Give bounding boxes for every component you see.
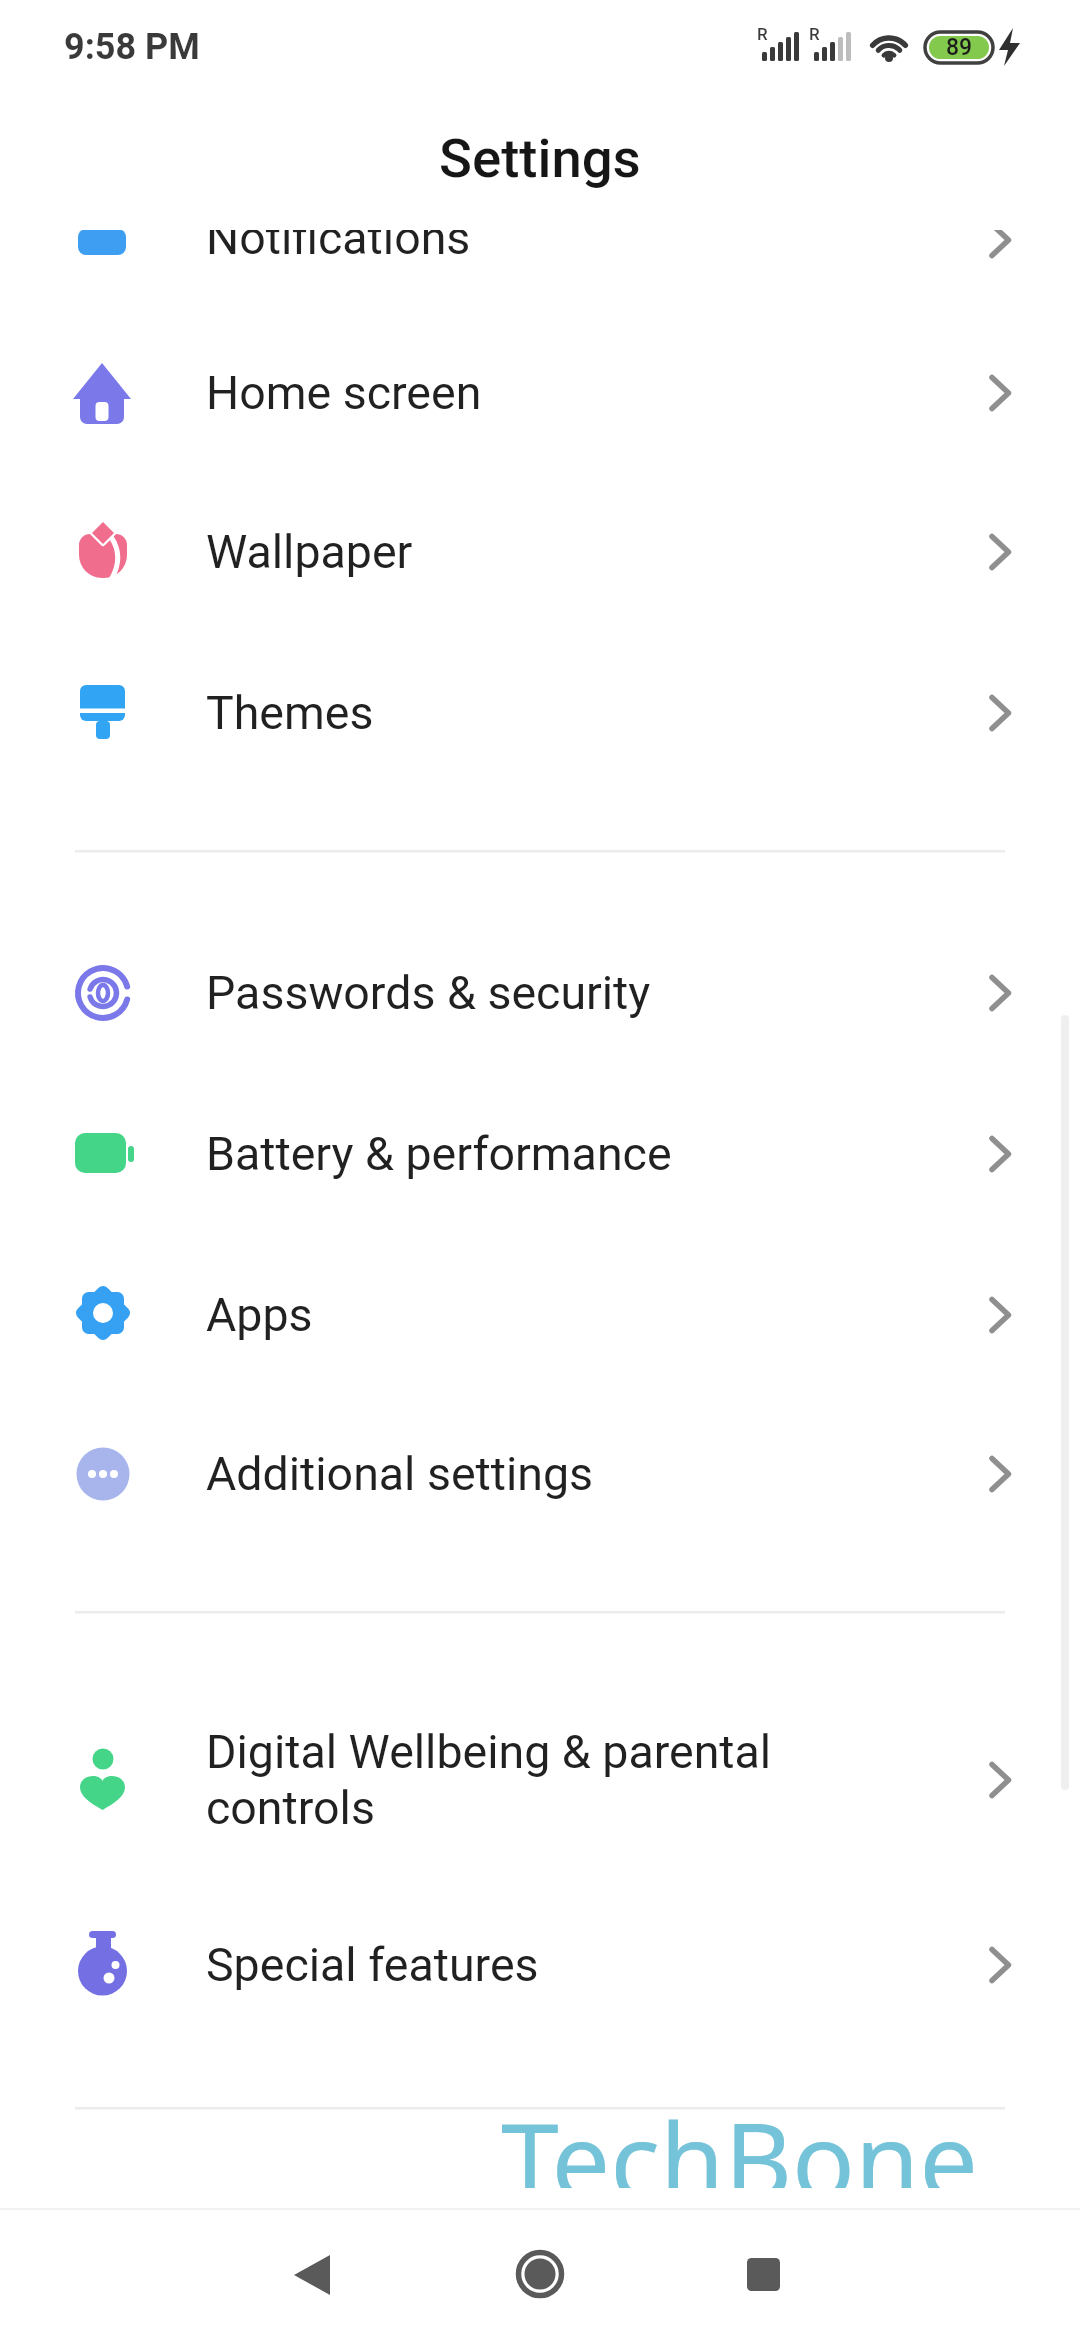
staticText: Digital Wellbeing & parental controls xyxy=(206,1725,772,1835)
button[interactable]: Home screen xyxy=(0,313,1080,473)
staticText: Battery & performance xyxy=(206,1127,672,1181)
staticText: Wallpaper xyxy=(206,525,413,579)
button[interactable]: Passwords & security xyxy=(0,913,1080,1073)
staticText: Settings xyxy=(439,126,641,190)
staticText: 9:58 PM xyxy=(64,26,200,68)
staticText: Special features xyxy=(206,1938,539,1992)
button[interactable]: Notifications xyxy=(0,158,1080,318)
button[interactable]: Additional settings xyxy=(0,1394,1080,1554)
button[interactable]: Battery & performance xyxy=(0,1074,1080,1234)
staticText: Themes xyxy=(206,686,374,740)
staticText: Home screen xyxy=(206,366,482,420)
staticText: TechBone xyxy=(501,2088,978,2188)
button[interactable] xyxy=(480,2240,600,2310)
button[interactable]: Special features xyxy=(0,1885,1080,2045)
button[interactable]: Themes xyxy=(0,633,1080,793)
button[interactable]: Digital Wellbeing & parental controls xyxy=(0,1670,1080,1890)
staticText: 89 xyxy=(946,34,973,61)
button[interactable] xyxy=(690,2240,810,2310)
button[interactable]: Apps xyxy=(0,1235,1080,1395)
staticText: Notifications xyxy=(206,211,471,265)
staticText: Apps xyxy=(206,1288,313,1342)
button[interactable] xyxy=(270,2240,390,2310)
staticText: Passwords & security xyxy=(206,966,651,1020)
staticText: R xyxy=(809,24,820,44)
staticText: R xyxy=(757,24,768,44)
button[interactable]: Wallpaper xyxy=(0,472,1080,632)
staticText: Additional settings xyxy=(206,1447,594,1501)
